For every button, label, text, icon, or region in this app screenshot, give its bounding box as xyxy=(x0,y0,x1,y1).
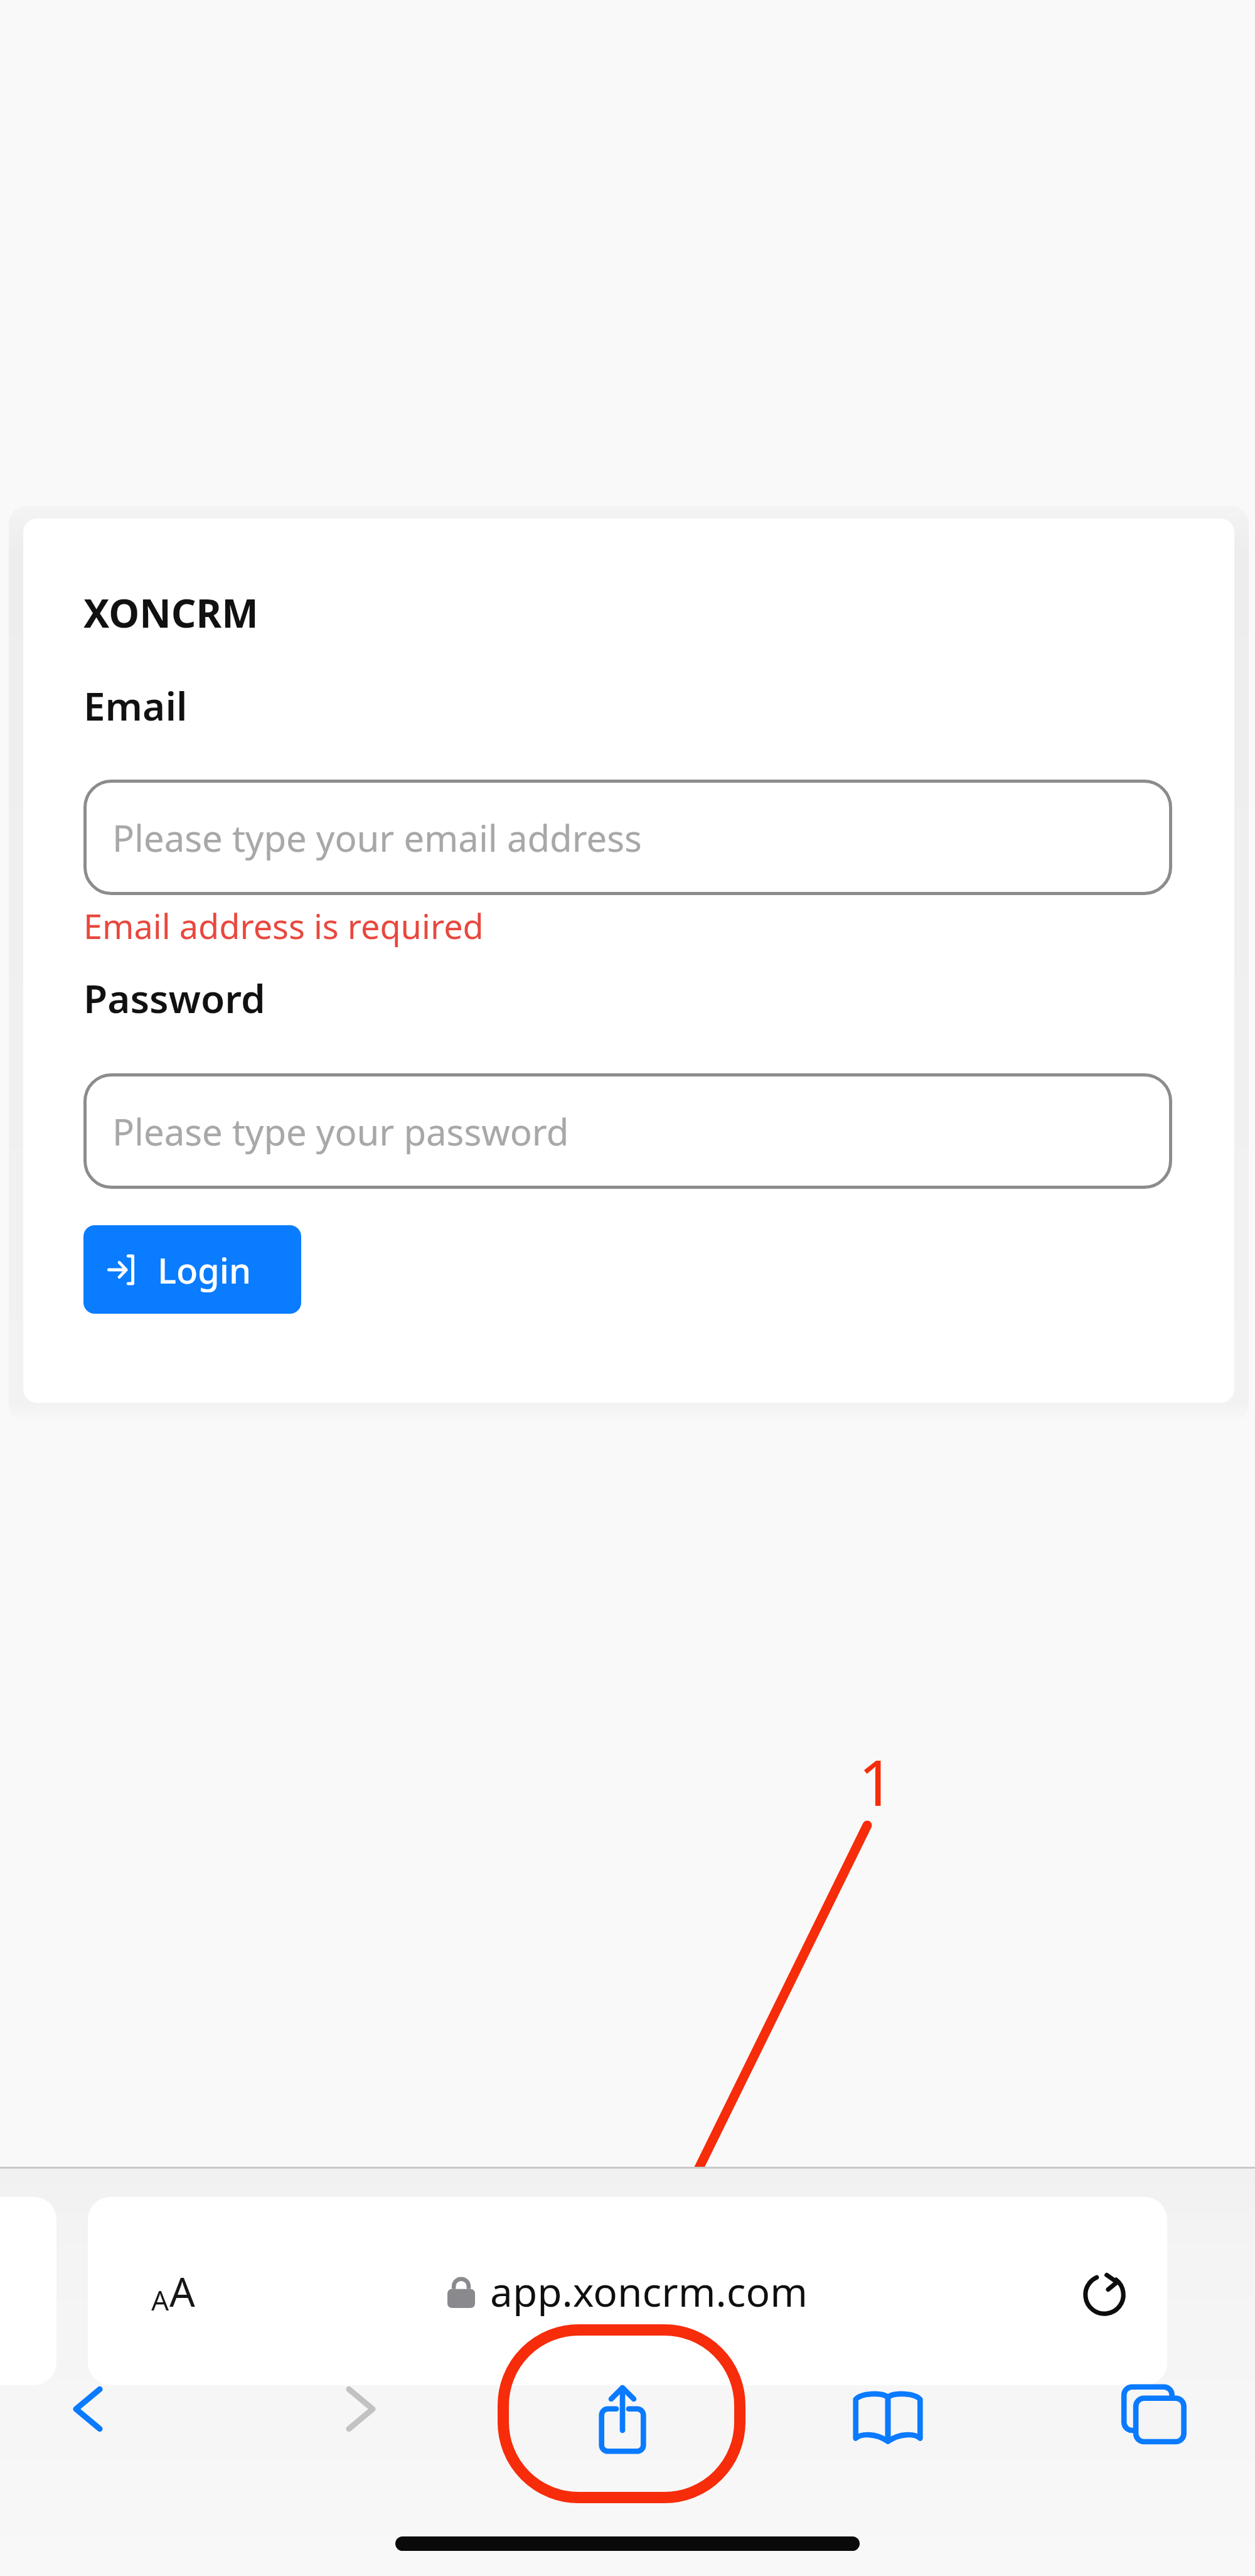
button[interactable]: Please type your password xyxy=(83,1073,1172,1189)
staticText: A xyxy=(151,2281,169,2319)
staticText: Password xyxy=(83,972,265,1024)
staticText: Login xyxy=(158,1246,252,1294)
button[interactable]: Tabs xyxy=(1097,2357,1210,2470)
staticText: Please type your email address xyxy=(112,813,642,862)
staticText: Email address is required xyxy=(83,903,484,949)
staticText: A xyxy=(169,2264,195,2319)
button[interactable]: Login xyxy=(83,1225,301,1314)
button[interactable]: Share xyxy=(566,2357,679,2470)
staticText: XONCRM xyxy=(83,586,259,639)
staticText: Please type your password xyxy=(112,1107,569,1156)
staticText: Email xyxy=(83,679,188,732)
button[interactable]: Reload xyxy=(1047,2233,1162,2349)
button[interactable]: Page settings xyxy=(88,2197,1167,2385)
button[interactable]: Back xyxy=(31,2353,144,2466)
staticText: app.xoncrm.com xyxy=(490,2264,808,2319)
button[interactable]: Please type your email address xyxy=(83,780,1172,895)
button[interactable]: Bookmarks xyxy=(831,2357,944,2470)
button[interactable]: Page settings xyxy=(115,2233,231,2349)
staticText: 1 xyxy=(858,1739,895,1824)
button[interactable]: Forward xyxy=(304,2353,417,2466)
